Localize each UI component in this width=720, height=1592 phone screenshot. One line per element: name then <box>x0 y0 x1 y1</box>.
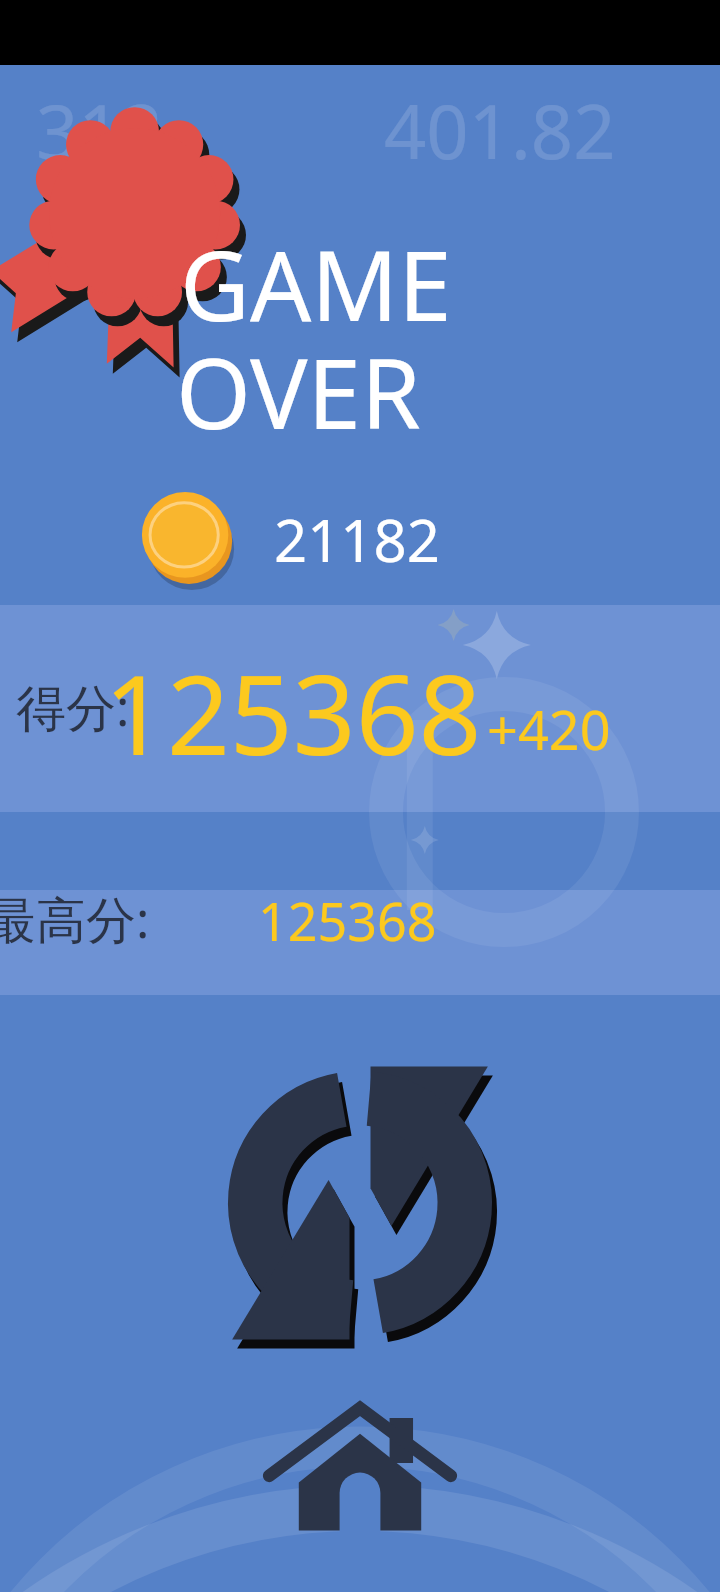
staticText: +420 <box>487 692 611 766</box>
button[interactable]: Home <box>258 1388 462 1538</box>
staticText: 312 <box>36 80 163 181</box>
staticText: 125368 <box>258 885 437 956</box>
staticText: 最高分: <box>0 885 150 953</box>
staticText: 401.82 <box>384 80 616 181</box>
staticText: GAME <box>180 218 452 349</box>
staticText: 125368 <box>104 637 482 787</box>
button[interactable]: Restart <box>196 1072 524 1334</box>
staticText: 21182 <box>274 500 440 579</box>
staticText: OVER <box>176 326 421 457</box>
staticText: 得分: <box>16 673 130 741</box>
